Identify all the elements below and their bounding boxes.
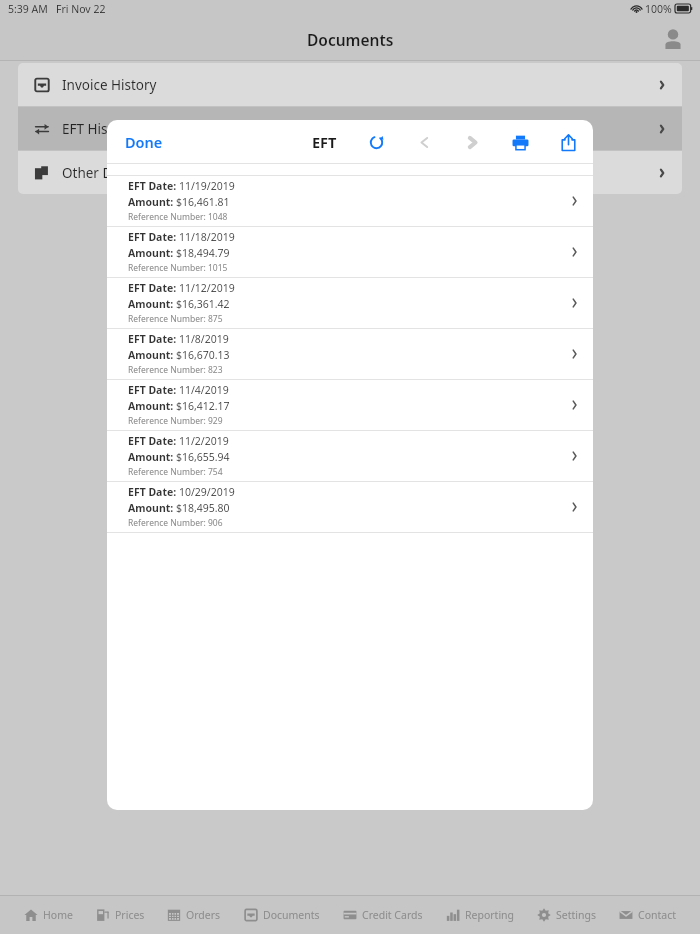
staticText: EFT Date: 11/19/2019 bbox=[128, 179, 235, 193]
staticText: Credit Cards bbox=[362, 908, 423, 922]
staticText: Reporting bbox=[465, 908, 515, 922]
staticText: Fri Nov 22 bbox=[56, 2, 106, 16]
button[interactable]: EFT Date: 11/12/2019 bbox=[107, 278, 593, 329]
button[interactable]: EFT Date: 10/29/2019 bbox=[107, 482, 593, 533]
staticText: EFT Date: 11/8/2019 bbox=[128, 332, 229, 346]
staticText: Amount: $16,655.94 bbox=[128, 450, 230, 464]
staticText: EFT History bbox=[62, 120, 133, 138]
button[interactable]: EFT Date: 11/4/2019 bbox=[107, 380, 593, 431]
staticText: Reference Number: 875 bbox=[128, 313, 223, 325]
staticText: 100% bbox=[645, 2, 672, 16]
staticText: Home bbox=[43, 908, 73, 922]
staticText: Documents bbox=[263, 908, 320, 922]
staticText: EFT Date: 10/29/2019 bbox=[128, 485, 235, 499]
button[interactable]: EFT Date: 11/2/2019 bbox=[107, 431, 593, 482]
staticText: Amount: $16,461.81 bbox=[128, 195, 230, 209]
staticText: EFT Date: 11/2/2019 bbox=[128, 434, 229, 448]
button[interactable]: Reporting bbox=[442, 904, 519, 926]
button[interactable]: Home bbox=[20, 904, 77, 926]
button[interactable]: Other Documents bbox=[18, 151, 682, 194]
staticText: Contact bbox=[638, 908, 676, 922]
staticText: EFT Date: 11/12/2019 bbox=[128, 281, 235, 295]
staticText: Other Documents bbox=[62, 164, 176, 182]
staticText: Reference Number: 1015 bbox=[128, 262, 228, 274]
staticText: Reference Number: 754 bbox=[128, 466, 223, 478]
staticText: Amount: $16,670.13 bbox=[128, 348, 230, 362]
staticText: Reference Number: 906 bbox=[128, 517, 223, 529]
button[interactable]: EFT Date: 11/19/2019 bbox=[107, 176, 593, 227]
staticText: 5:39 AM bbox=[8, 2, 48, 16]
button[interactable]: EFT Date: 11/8/2019 bbox=[107, 329, 593, 380]
button[interactable]: Account bbox=[658, 24, 688, 54]
button[interactable]: Refresh bbox=[365, 131, 387, 153]
staticText: Amount: $16,361.42 bbox=[128, 297, 230, 311]
button[interactable]: Share bbox=[557, 131, 579, 153]
staticText: Prices bbox=[115, 908, 145, 922]
staticText: EFT bbox=[312, 132, 337, 152]
staticText: Invoice History bbox=[62, 76, 157, 94]
button[interactable]: Orders bbox=[163, 904, 225, 926]
button[interactable]: Prices bbox=[92, 904, 149, 926]
button[interactable]: Settings bbox=[533, 904, 600, 926]
staticText: Reference Number: 823 bbox=[128, 364, 223, 376]
staticText: Settings bbox=[556, 908, 596, 922]
staticText: Orders bbox=[186, 908, 221, 922]
button[interactable]: EFT History bbox=[18, 107, 682, 150]
staticText: Documents bbox=[307, 29, 394, 50]
staticText: EFT Date: 11/18/2019 bbox=[128, 230, 235, 244]
button[interactable]: Done bbox=[117, 126, 171, 158]
button[interactable]: Credit Cards bbox=[339, 904, 427, 926]
button[interactable]: Invoice History bbox=[18, 63, 682, 106]
staticText: Done bbox=[125, 132, 163, 152]
staticText: Reference Number: 1048 bbox=[128, 211, 228, 223]
button[interactable]: Contact bbox=[615, 904, 680, 926]
staticText: Amount: $18,495.80 bbox=[128, 501, 230, 515]
staticText: EFT Date: 11/4/2019 bbox=[128, 383, 229, 397]
button[interactable]: Forward bbox=[461, 131, 483, 153]
button[interactable]: Documents bbox=[240, 904, 324, 926]
button[interactable]: EFT Date: 11/18/2019 bbox=[107, 227, 593, 278]
staticText: Amount: $16,412.17 bbox=[128, 399, 230, 413]
staticText: Amount: $18,494.79 bbox=[128, 246, 230, 260]
button[interactable]: Print bbox=[509, 131, 531, 153]
staticText: Reference Number: 929 bbox=[128, 415, 223, 427]
button[interactable]: Back bbox=[413, 131, 435, 153]
